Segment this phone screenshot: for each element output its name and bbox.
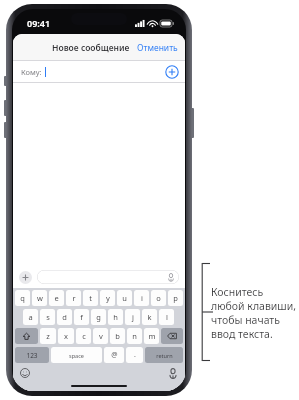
other: Диктовка bbox=[167, 273, 175, 281]
staticText: l bbox=[166, 312, 168, 322]
staticText: z bbox=[46, 331, 50, 341]
button[interactable]: x bbox=[58, 328, 74, 344]
staticText: k bbox=[147, 312, 152, 322]
button[interactable]: f bbox=[74, 309, 89, 325]
staticText: g bbox=[96, 312, 101, 322]
button[interactable]: v bbox=[93, 328, 108, 344]
staticText: o bbox=[156, 293, 161, 303]
staticText: s bbox=[46, 312, 50, 322]
button[interactable]: Отменить bbox=[130, 37, 185, 59]
button[interactable]: @ bbox=[104, 347, 124, 363]
staticText: y bbox=[106, 293, 110, 303]
button[interactable]: Эмодзи bbox=[20, 368, 30, 378]
button[interactable]: e bbox=[49, 290, 64, 306]
staticText: @ bbox=[111, 350, 118, 360]
button[interactable]: l bbox=[159, 309, 174, 325]
button[interactable]: 123 bbox=[15, 347, 49, 363]
staticText: m bbox=[148, 331, 156, 341]
button[interactable]: Shift bbox=[15, 328, 38, 344]
staticText: r bbox=[72, 293, 76, 303]
staticText: space bbox=[69, 352, 84, 359]
staticText: v bbox=[99, 331, 103, 341]
button[interactable]: j bbox=[125, 309, 140, 325]
button[interactable]: Диктовка bbox=[37, 270, 179, 284]
staticText: Новое сообщение bbox=[52, 42, 130, 54]
button[interactable]: d bbox=[57, 309, 72, 325]
staticText: p bbox=[173, 293, 178, 303]
staticText: Отменить bbox=[137, 42, 178, 54]
staticText: e bbox=[54, 293, 59, 303]
button[interactable]: w bbox=[32, 290, 47, 306]
staticText: a bbox=[28, 312, 33, 322]
button[interactable]: n bbox=[127, 328, 142, 344]
staticText: q bbox=[20, 293, 25, 303]
button[interactable]: k bbox=[142, 309, 157, 325]
button[interactable]: t bbox=[83, 290, 98, 306]
staticText: return bbox=[156, 352, 173, 359]
staticText: . bbox=[134, 350, 136, 360]
button[interactable]: o bbox=[151, 290, 166, 306]
button[interactable]: m bbox=[144, 328, 159, 344]
staticText: 123 bbox=[26, 351, 38, 360]
staticText: Коснитесь любой клавиши, чтобы начать вв… bbox=[211, 285, 297, 341]
button[interactable]: u bbox=[117, 290, 132, 306]
staticText: f bbox=[80, 312, 83, 322]
button[interactable]: z bbox=[40, 328, 56, 344]
staticText: n bbox=[132, 331, 137, 341]
button[interactable]: space bbox=[51, 347, 102, 363]
staticText: 09:41 bbox=[27, 17, 51, 29]
staticText: x bbox=[64, 331, 68, 341]
staticText: u bbox=[122, 293, 127, 303]
button[interactable]: . bbox=[126, 347, 143, 363]
button[interactable]: c bbox=[76, 328, 91, 344]
staticText: Кому: bbox=[21, 67, 42, 77]
button[interactable]: b bbox=[110, 328, 125, 344]
staticText: j bbox=[132, 312, 134, 322]
staticText: t bbox=[89, 293, 92, 303]
button[interactable]: p bbox=[168, 290, 183, 306]
staticText: b bbox=[115, 331, 120, 341]
button[interactable]: g bbox=[91, 309, 106, 325]
button[interactable]: a bbox=[23, 309, 38, 325]
button[interactable]: y bbox=[100, 290, 115, 306]
button[interactable]: q bbox=[15, 290, 30, 306]
staticText: i bbox=[141, 293, 143, 303]
staticText: w bbox=[37, 293, 43, 303]
button[interactable]: r bbox=[66, 290, 81, 306]
button[interactable]: i bbox=[134, 290, 149, 306]
staticText: d bbox=[62, 312, 67, 322]
button[interactable]: Добавить контакт bbox=[165, 65, 179, 79]
staticText: c bbox=[82, 331, 86, 341]
button[interactable]: return bbox=[145, 347, 183, 363]
button[interactable]: h bbox=[108, 309, 123, 325]
button[interactable]: s bbox=[40, 309, 55, 325]
button[interactable]: Удалить bbox=[161, 328, 183, 344]
button[interactable]: Диктовка bbox=[168, 368, 178, 378]
button[interactable]: Вложения bbox=[19, 271, 32, 284]
staticText: h bbox=[113, 312, 118, 322]
